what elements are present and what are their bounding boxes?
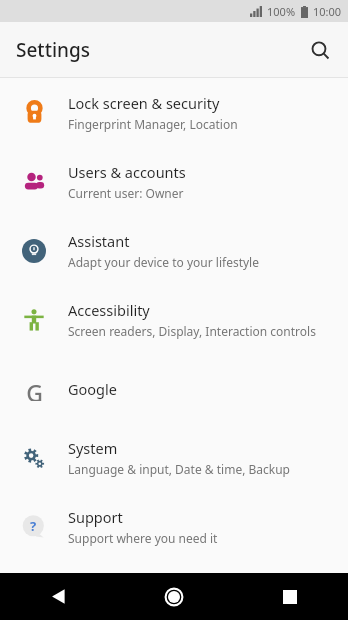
button[interactable]: Search [302, 32, 338, 68]
button[interactable]: Back [0, 573, 116, 620]
staticText: Settings [16, 37, 90, 63]
button[interactable]: ? [0, 492, 348, 561]
button[interactable]: Users & accounts [0, 147, 348, 216]
staticText: Google [68, 379, 117, 399]
staticText: ? [30, 517, 37, 535]
staticText: Screen readers, Display, Interaction con… [68, 323, 316, 339]
staticText: Accessibility [68, 300, 150, 320]
staticText: G [26, 377, 43, 401]
staticText: Users & accounts [68, 162, 186, 182]
button[interactable]: G [0, 354, 348, 423]
button[interactable]: Accessibility [0, 285, 348, 354]
button[interactable]: Lock screen & security [0, 78, 348, 147]
staticText: Support where you need it [68, 530, 218, 546]
staticText: Assistant [68, 231, 130, 251]
button[interactable]: Recent apps [232, 573, 348, 620]
button[interactable]: System [0, 423, 348, 492]
staticText: Lock screen & security [68, 93, 220, 113]
staticText: Current user: Owner [68, 185, 184, 201]
staticText: Support [68, 507, 123, 527]
staticText: 100% [267, 4, 296, 19]
staticText: Adapt your device to your lifestyle [68, 254, 259, 270]
staticText: System [68, 438, 118, 458]
staticText: Language & input, Date & time, Backup [68, 461, 290, 477]
staticText: Fingerprint Manager, Location [68, 116, 238, 132]
staticText: 10:00 [313, 4, 342, 19]
button[interactable]: Home [116, 573, 232, 620]
button[interactable]: Assistant [0, 216, 348, 285]
